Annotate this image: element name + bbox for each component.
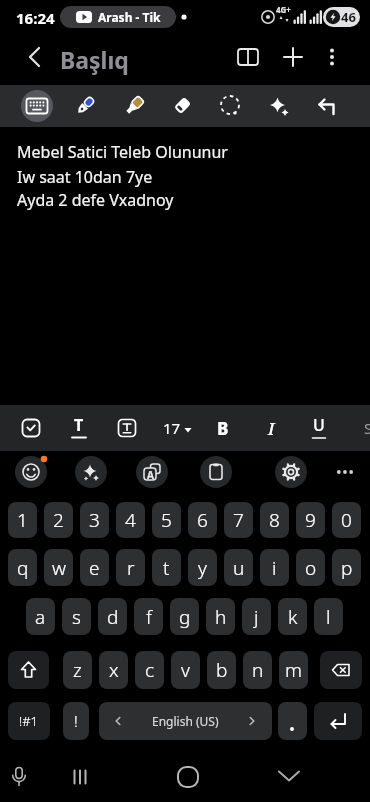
button[interactable]: q bbox=[8, 549, 37, 586]
button[interactable] bbox=[64, 413, 94, 443]
button[interactable] bbox=[4, 762, 34, 792]
button[interactable]: l bbox=[314, 598, 343, 635]
staticText: k bbox=[288, 604, 298, 630]
button[interactable]: 6 bbox=[188, 502, 217, 538]
staticText: p bbox=[341, 555, 353, 581]
button[interactable] bbox=[213, 89, 247, 123]
button[interactable]: 8 bbox=[260, 502, 289, 538]
button[interactable]: !#1 bbox=[8, 702, 50, 740]
button[interactable] bbox=[233, 42, 263, 72]
button[interactable]: 4 bbox=[116, 502, 145, 538]
button[interactable] bbox=[14, 411, 48, 445]
button[interactable]: s bbox=[62, 598, 91, 635]
button[interactable]: English (US) bbox=[99, 702, 272, 740]
button[interactable]: h bbox=[206, 598, 235, 635]
button[interactable] bbox=[320, 45, 344, 69]
staticText: T bbox=[74, 414, 84, 436]
staticText: a bbox=[35, 604, 46, 630]
button[interactable]: g bbox=[170, 598, 199, 635]
staticText: u bbox=[233, 555, 245, 581]
button[interactable] bbox=[278, 702, 307, 740]
button[interactable] bbox=[66, 763, 94, 791]
staticText: l bbox=[326, 604, 331, 630]
button[interactable] bbox=[20, 43, 48, 71]
button[interactable]: w bbox=[44, 549, 73, 586]
button[interactable]: p bbox=[332, 549, 361, 586]
button[interactable] bbox=[110, 713, 126, 729]
button[interactable] bbox=[320, 651, 362, 689]
button[interactable]: e bbox=[80, 549, 109, 586]
staticText: Arash - Tik bbox=[98, 9, 161, 25]
button[interactable]: 9 bbox=[296, 502, 325, 538]
button[interactable]: ! bbox=[63, 702, 89, 740]
button[interactable] bbox=[136, 456, 168, 488]
staticText: r bbox=[127, 555, 135, 581]
staticText: t bbox=[163, 555, 170, 581]
button[interactable]: i bbox=[260, 549, 289, 586]
button[interactable]: k bbox=[278, 598, 307, 635]
button[interactable] bbox=[304, 413, 334, 443]
staticText: 17 bbox=[163, 418, 181, 438]
button[interactable] bbox=[275, 456, 307, 488]
button[interactable] bbox=[310, 89, 344, 123]
button[interactable]: t bbox=[152, 549, 181, 586]
button[interactable] bbox=[75, 456, 107, 488]
staticText: U bbox=[313, 414, 325, 436]
staticText: j bbox=[254, 604, 259, 630]
button[interactable] bbox=[15, 456, 47, 488]
button[interactable]: j bbox=[242, 598, 271, 635]
button[interactable]: Arash - Tik bbox=[60, 6, 176, 28]
button[interactable] bbox=[314, 702, 362, 740]
staticText: Iw saat 10dan 7ye bbox=[17, 166, 153, 188]
button[interactable]: v bbox=[171, 651, 200, 689]
button[interactable]: 5 bbox=[152, 502, 181, 538]
button[interactable]: m bbox=[279, 651, 308, 689]
button[interactable]: x bbox=[99, 651, 128, 689]
staticText: h bbox=[215, 604, 227, 630]
button[interactable] bbox=[171, 760, 205, 794]
button[interactable] bbox=[110, 411, 144, 445]
button[interactable]: 1 bbox=[8, 502, 37, 538]
button[interactable]: a bbox=[26, 598, 55, 635]
button[interactable] bbox=[21, 90, 53, 122]
button[interactable] bbox=[200, 456, 232, 488]
button[interactable]: f bbox=[134, 598, 163, 635]
button[interactable] bbox=[8, 651, 49, 689]
staticText: B bbox=[217, 417, 229, 440]
button[interactable] bbox=[272, 759, 306, 793]
staticText: 8 bbox=[269, 507, 280, 533]
staticText: English (US) bbox=[152, 713, 219, 729]
button[interactable] bbox=[165, 89, 199, 123]
button[interactable] bbox=[200, 456, 232, 488]
staticText: z bbox=[73, 657, 82, 683]
button[interactable] bbox=[244, 713, 260, 729]
button[interactable] bbox=[275, 456, 307, 488]
button[interactable]: n bbox=[243, 651, 272, 689]
button[interactable] bbox=[136, 456, 168, 488]
button[interactable] bbox=[330, 457, 360, 487]
button[interactable]: z bbox=[63, 651, 92, 689]
button[interactable] bbox=[75, 456, 107, 488]
button[interactable]: 0 bbox=[332, 502, 361, 538]
staticText: y bbox=[198, 555, 207, 581]
button[interactable]: 2 bbox=[44, 502, 73, 538]
button[interactable]: o bbox=[296, 549, 325, 586]
button[interactable] bbox=[15, 456, 47, 488]
button[interactable]: c bbox=[135, 651, 164, 689]
button[interactable] bbox=[181, 423, 195, 437]
button[interactable]: 7 bbox=[224, 502, 253, 538]
staticText: m bbox=[285, 657, 302, 683]
staticText: x bbox=[109, 657, 119, 683]
button[interactable] bbox=[117, 89, 151, 123]
button[interactable] bbox=[262, 89, 296, 123]
button[interactable]: u bbox=[224, 549, 253, 586]
button[interactable]: r bbox=[116, 549, 145, 586]
button[interactable]: y bbox=[188, 549, 217, 586]
button[interactable]: b bbox=[207, 651, 236, 689]
staticText: ! bbox=[74, 711, 78, 731]
staticText: o bbox=[305, 555, 317, 581]
button[interactable]: 3 bbox=[80, 502, 109, 538]
button[interactable] bbox=[68, 89, 102, 123]
button[interactable]: d bbox=[98, 598, 127, 635]
button[interactable] bbox=[278, 42, 308, 72]
